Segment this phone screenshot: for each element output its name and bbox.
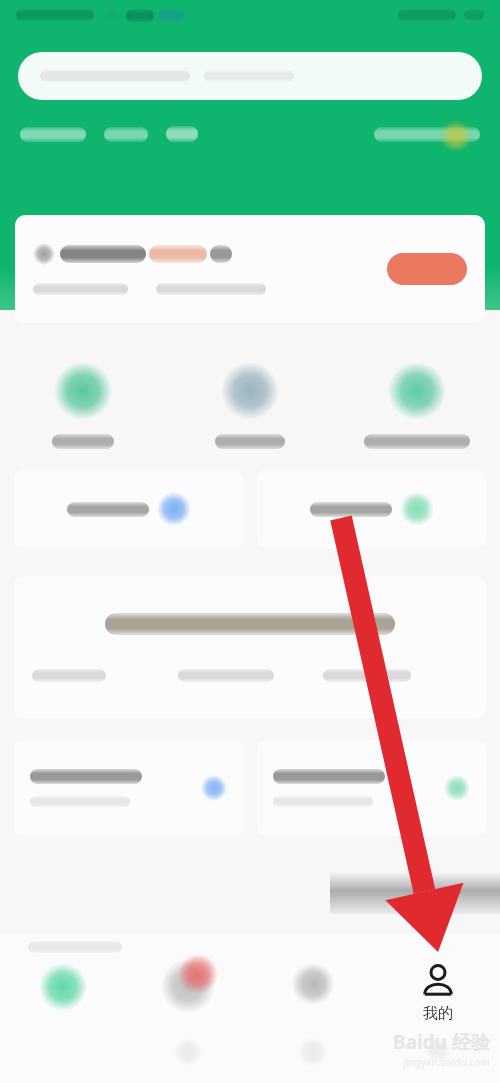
- button[interactable]: [14, 470, 243, 548]
- staticText: 我的: [423, 1004, 453, 1023]
- button[interactable]: [32, 669, 178, 682]
- button[interactable]: [387, 253, 467, 285]
- button[interactable]: [166, 340, 333, 470]
- button[interactable]: [257, 740, 486, 836]
- button[interactable]: [104, 121, 148, 148]
- button[interactable]: [166, 120, 198, 148]
- button[interactable]: [125, 955, 250, 1055]
- button[interactable]: [178, 669, 323, 682]
- button[interactable]: [14, 740, 243, 836]
- button[interactable]: [20, 121, 86, 148]
- other: 我的: [418, 961, 458, 1001]
- button[interactable]: 我的: [375, 955, 500, 1055]
- button[interactable]: [18, 52, 482, 100]
- button[interactable]: [0, 340, 166, 470]
- button[interactable]: [333, 340, 500, 470]
- button[interactable]: [257, 470, 486, 548]
- button[interactable]: [0, 955, 125, 1055]
- button[interactable]: [323, 669, 468, 682]
- staticText: Baidu 经验: [393, 1029, 490, 1055]
- button[interactable]: [250, 955, 375, 1055]
- button[interactable]: [15, 215, 485, 323]
- staticText: jingyan.baidu.com: [403, 1055, 490, 1069]
- button[interactable]: [14, 576, 486, 718]
- button[interactable]: [374, 121, 480, 148]
